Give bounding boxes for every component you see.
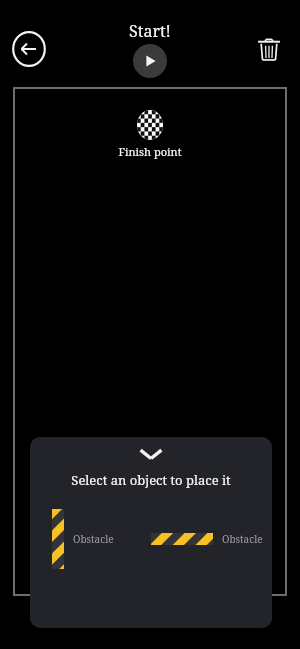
button[interactable]: Start! xyxy=(129,20,171,78)
button[interactable]: Obstacle xyxy=(151,532,272,546)
button[interactable]: Collapse xyxy=(30,437,272,471)
button[interactable]: Back xyxy=(8,28,50,70)
button[interactable]: Obstacle xyxy=(30,509,151,569)
staticText: Obstacle xyxy=(222,532,263,546)
staticText: Start! xyxy=(129,20,171,42)
staticText: Finish point xyxy=(118,144,182,159)
staticText: Obstacle xyxy=(73,532,114,546)
button[interactable]: Delete xyxy=(248,28,290,70)
staticText: Select an object to place it xyxy=(30,471,272,489)
